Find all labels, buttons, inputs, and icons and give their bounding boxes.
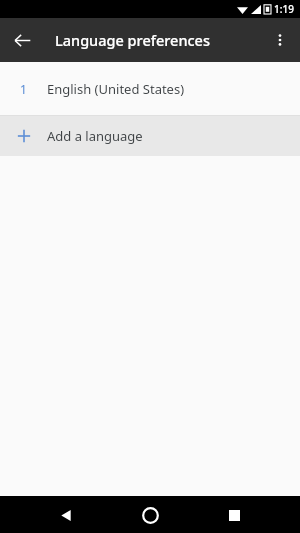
button[interactable]: Back xyxy=(50,499,82,531)
button[interactable]: Back xyxy=(6,24,38,56)
button[interactable]: Recents xyxy=(218,499,250,531)
button[interactable]: More options xyxy=(264,24,296,56)
staticText: English (United States) xyxy=(47,80,185,98)
button[interactable]: Home xyxy=(133,498,167,532)
staticText: 1:19 xyxy=(274,2,294,16)
staticText: Add a language xyxy=(47,127,143,145)
button[interactable]: Add a language xyxy=(0,116,300,156)
button[interactable]: 1 xyxy=(0,62,300,115)
staticText: 1 xyxy=(20,81,27,97)
staticText: Language preferences xyxy=(55,30,210,50)
